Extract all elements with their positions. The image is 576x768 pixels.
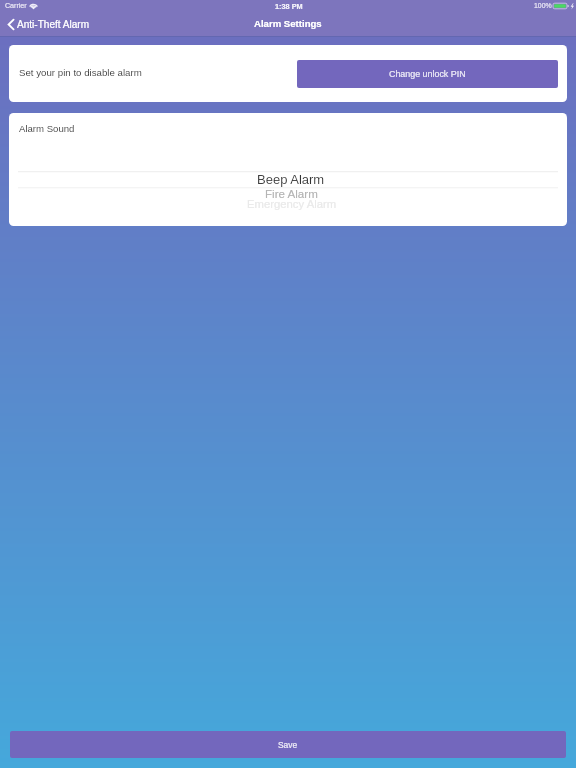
staticText: Fire Alarm (265, 187, 318, 200)
staticText: Carrier (5, 2, 27, 10)
staticText: Save (278, 740, 298, 749)
staticText: Alarm Settings (254, 18, 322, 29)
staticText: Anti-Theft Alarm (17, 19, 90, 30)
staticText: Beep Alarm (257, 172, 325, 187)
staticText: Set your pin to disable alarm (19, 67, 142, 78)
button[interactable]: Change unlock PIN (297, 60, 558, 88)
staticText: Alarm Sound (19, 123, 75, 134)
button[interactable]: Back to Anti-Theft Alarm (0, 17, 98, 32)
button[interactable]: Save (10, 731, 566, 758)
staticText: Change unlock PIN (389, 69, 466, 79)
staticText: 1:38 PM (275, 2, 303, 10)
staticText: 100% (534, 2, 552, 10)
staticText: Emergency Alarm (247, 198, 337, 211)
